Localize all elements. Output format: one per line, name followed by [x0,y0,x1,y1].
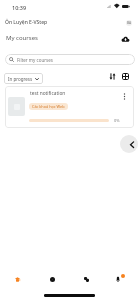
button[interactable]: Profile [126,20,132,26]
button[interactable]: test notification [5,86,134,128]
staticText: 10:39 [12,4,27,11]
button[interactable]: More options [120,92,129,101]
button[interactable]: Courses [8,272,26,286]
staticText: Ôn Luyện E-VStep [5,19,48,26]
staticText: My courses [6,34,38,42]
button[interactable]: In progress [4,73,43,84]
button[interactable]: Download courses [119,33,131,45]
button[interactable]: Sort courses [106,70,118,82]
button[interactable]: Dashboard [43,272,61,286]
button[interactable]: Notifications [111,272,129,286]
staticText: test notification [30,90,66,97]
staticText: In progress [8,76,33,82]
button[interactable]: Open navigation drawer [120,135,138,153]
button[interactable]: Filter my courses [5,54,135,65]
staticText: 0% [114,118,120,123]
staticText: Filter my courses [17,57,53,63]
button[interactable]: Messages [77,272,95,286]
staticText: BA [127,21,132,25]
staticText: Các khoá học Web [32,104,65,109]
button[interactable]: Grid view [119,70,131,82]
